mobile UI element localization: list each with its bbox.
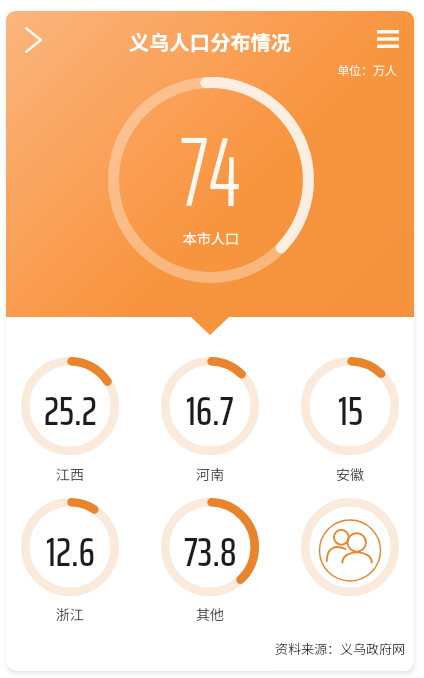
staticText: 浙江 xyxy=(25,604,115,624)
staticText: 25.2 xyxy=(44,378,97,443)
staticText: 74 xyxy=(180,95,242,249)
staticText: 江西 xyxy=(25,464,115,484)
staticText: 16.7 xyxy=(186,378,234,443)
staticText: 单位：万人 xyxy=(337,61,398,78)
button[interactable]: 25.2 xyxy=(21,357,119,455)
staticText: 河南 xyxy=(165,464,255,484)
button[interactable]: 16.7 xyxy=(161,357,259,455)
staticText: 安徽 xyxy=(305,464,395,484)
button[interactable]: 73.8 xyxy=(161,498,259,596)
staticText: 12.6 xyxy=(46,519,95,584)
button[interactable]: 15 xyxy=(301,357,399,455)
staticText: 义乌人口分布情况 xyxy=(129,27,292,56)
staticText: 15 xyxy=(338,378,363,443)
button[interactable]: Expand xyxy=(12,19,54,61)
staticText: 本市人口 xyxy=(183,228,239,248)
button[interactable]: Population xyxy=(301,498,399,596)
button[interactable]: Menu xyxy=(369,20,407,58)
button[interactable]: 12.6 xyxy=(21,498,119,596)
staticText: 资料来源：义乌政府网 xyxy=(275,639,406,658)
staticText: 73.8 xyxy=(184,519,237,584)
staticText: 其他 xyxy=(165,604,255,624)
